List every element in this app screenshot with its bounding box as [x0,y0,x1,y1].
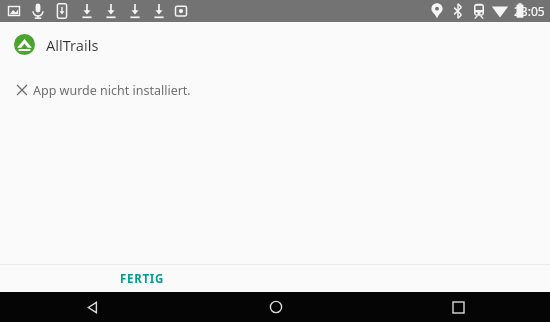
staticText: App wurde nicht installiert. [33,82,191,99]
button[interactable]: Back [0,292,184,322]
button[interactable]: Home [184,292,367,322]
staticText: 23:05 [514,3,545,19]
button[interactable]: FERTIG [108,266,176,292]
button[interactable]: Recent apps [367,292,550,322]
staticText: FERTIG [120,271,164,287]
staticText: AllTrails [46,35,99,55]
